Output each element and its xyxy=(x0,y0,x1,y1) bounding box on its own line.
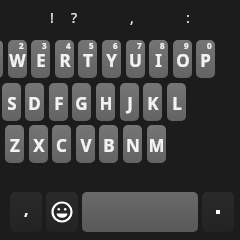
staticText: ! xyxy=(50,8,54,27)
staticText: Q xyxy=(0,49,1,72)
button[interactable]: M xyxy=(147,125,166,163)
button[interactable]: P xyxy=(196,40,215,78)
staticText: R xyxy=(59,49,71,72)
button[interactable]: O xyxy=(173,40,192,78)
button[interactable]: F xyxy=(49,83,68,121)
staticText: 8 xyxy=(160,40,165,51)
button[interactable]: G xyxy=(72,83,91,121)
button[interactable]: U xyxy=(126,40,145,78)
staticText: 3 xyxy=(42,40,47,51)
staticText: H xyxy=(99,92,113,115)
staticText: B xyxy=(103,134,115,157)
button[interactable]: D xyxy=(25,83,44,121)
button[interactable]: C xyxy=(52,125,71,163)
button[interactable]: R xyxy=(55,40,74,78)
staticText: 9 xyxy=(184,40,189,51)
staticText: L xyxy=(172,92,182,115)
staticText: 7 xyxy=(137,40,142,51)
button[interactable]: T xyxy=(78,40,97,78)
staticText: , xyxy=(24,198,29,220)
button[interactable]: Y xyxy=(102,40,121,78)
button[interactable]: Space xyxy=(82,192,198,232)
staticText: G xyxy=(75,92,88,115)
button[interactable]: Period xyxy=(202,192,234,232)
staticText: 5 xyxy=(89,40,94,51)
button[interactable]: N xyxy=(123,125,142,163)
staticText: N xyxy=(126,134,140,157)
button[interactable]: Z xyxy=(5,125,24,163)
staticText: 6 xyxy=(113,40,118,51)
staticText: ? xyxy=(71,8,78,27)
button[interactable]: S xyxy=(2,83,21,121)
button[interactable]: Comma xyxy=(10,192,42,232)
staticText: X xyxy=(33,134,45,157)
staticText: 4 xyxy=(66,40,71,51)
staticText: U xyxy=(129,49,142,72)
staticText: M xyxy=(148,134,165,157)
button[interactable]: E xyxy=(31,40,50,78)
staticText: P xyxy=(200,49,211,72)
button[interactable]: L xyxy=(167,83,186,121)
staticText: 2 xyxy=(19,40,24,51)
staticText: F xyxy=(54,92,64,115)
button[interactable]: Q xyxy=(0,40,3,78)
staticText: : xyxy=(186,8,190,27)
staticText: O xyxy=(176,49,190,72)
staticText: Y xyxy=(106,49,117,72)
button[interactable]: V xyxy=(76,125,95,163)
staticText: E xyxy=(36,49,46,72)
staticText: 0 xyxy=(207,40,212,51)
staticText: , xyxy=(130,8,134,27)
staticText: Z xyxy=(10,134,20,157)
staticText: W xyxy=(9,49,26,72)
staticText: K xyxy=(147,92,159,115)
button[interactable]: K xyxy=(143,83,162,121)
staticText: S xyxy=(7,92,17,115)
button[interactable]: I xyxy=(149,40,168,78)
button[interactable]: B xyxy=(99,125,118,163)
staticText: D xyxy=(28,92,41,115)
staticText: V xyxy=(80,134,92,157)
button[interactable]: H xyxy=(96,83,115,121)
button[interactable]: Emoji keyboard xyxy=(46,192,78,232)
staticText: I xyxy=(155,49,162,72)
button[interactable]: J xyxy=(120,83,139,121)
staticText: C xyxy=(56,134,67,157)
button[interactable]: X xyxy=(29,125,48,163)
staticText: J xyxy=(127,92,133,115)
staticText: T xyxy=(83,49,93,72)
button[interactable]: W xyxy=(8,40,27,78)
